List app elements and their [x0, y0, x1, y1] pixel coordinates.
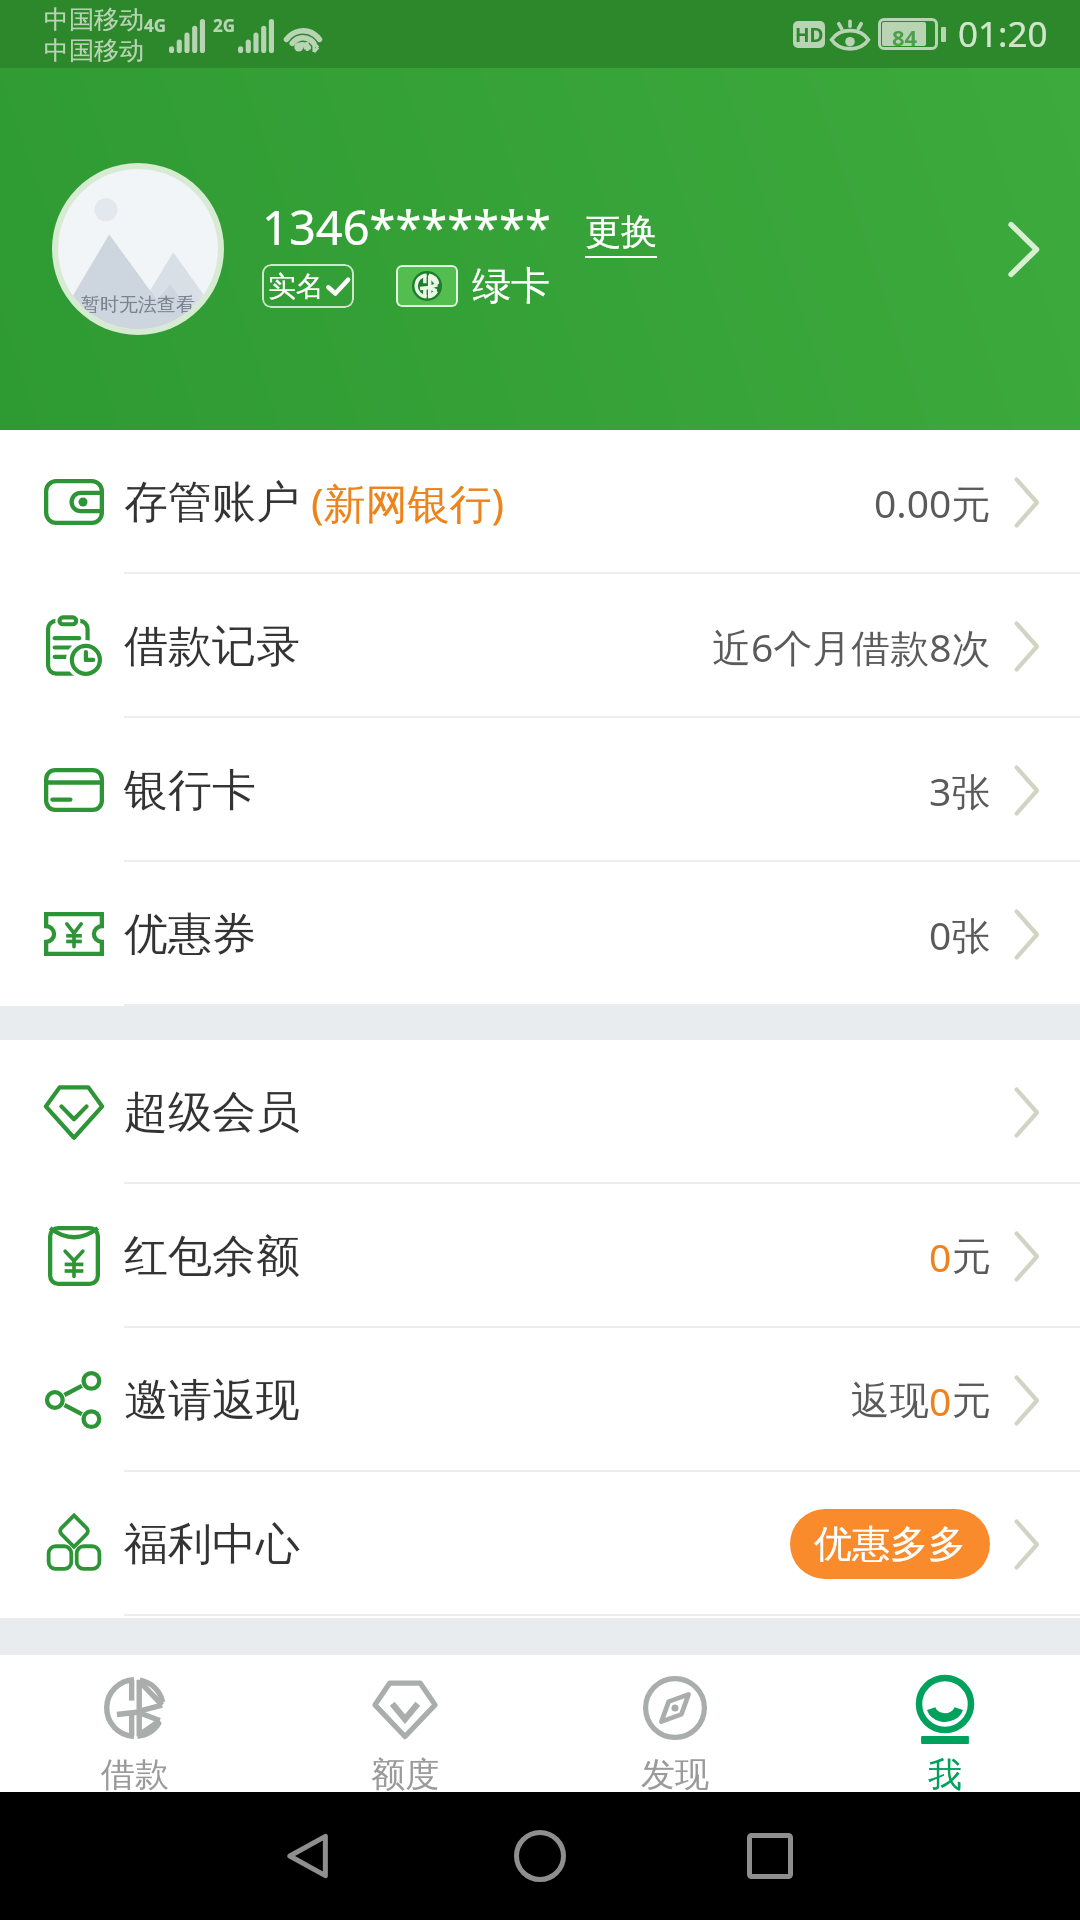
button[interactable]: 发现 — [540, 1655, 810, 1792]
staticText: 邀请返现 — [124, 1373, 300, 1428]
button[interactable]: 我 — [810, 1655, 1080, 1792]
button[interactable]: 福利中心 — [0, 1472, 1080, 1616]
staticText: 84 — [892, 22, 918, 46]
button[interactable]: 额度 — [270, 1655, 540, 1792]
staticText: (新网银行) — [300, 474, 505, 531]
staticText: 1346******* — [262, 195, 551, 259]
button[interactable]: Back — [265, 1811, 355, 1901]
button[interactable]: 邀请返现 — [0, 1328, 1080, 1472]
button[interactable]: Home — [495, 1811, 585, 1901]
staticText: 借款 — [101, 1753, 169, 1792]
button[interactable]: 借款 — [0, 1655, 270, 1792]
button[interactable]: 红包余额 — [0, 1184, 1080, 1328]
staticText: 近6个月借款8次 — [712, 620, 991, 673]
button[interactable]: 存管账户 — [0, 430, 1080, 574]
button[interactable]: 暂时无法查看 — [0, 68, 1080, 430]
staticText: HD — [795, 22, 824, 48]
staticText: 4G — [144, 14, 167, 37]
staticText: 3张 — [929, 764, 991, 817]
staticText: 发现 — [641, 1753, 709, 1792]
staticText: 中国移动 — [44, 35, 144, 66]
staticText: 福利中心 — [124, 1517, 300, 1572]
staticText: 超级会员 — [124, 1085, 300, 1140]
staticText: 01:20 — [958, 10, 1048, 58]
staticText: 更换 — [585, 209, 657, 254]
staticText: 0 — [929, 1230, 952, 1283]
staticText: 存管账户 — [124, 475, 300, 530]
staticText: 优惠券 — [124, 907, 256, 962]
staticText: 红包余额 — [124, 1229, 300, 1284]
staticText: 暂时无法查看 — [81, 293, 195, 317]
button[interactable]: 优惠券 — [0, 862, 1080, 1006]
staticText: 元 — [952, 1232, 991, 1281]
staticText: 我 — [928, 1753, 962, 1792]
button[interactable]: 借款记录 — [0, 574, 1080, 718]
staticText: 额度 — [371, 1753, 439, 1792]
staticText: 0.00元 — [874, 476, 991, 529]
button[interactable]: 超级会员 — [0, 1040, 1080, 1184]
staticText: 实名 — [268, 269, 324, 304]
staticText: 优惠多多 — [814, 1520, 966, 1568]
button[interactable]: Recents — [725, 1811, 815, 1901]
staticText: 中国移动 — [44, 4, 144, 35]
staticText: 返现 — [851, 1376, 929, 1425]
staticText: 0张 — [929, 908, 991, 961]
staticText: 2G — [213, 14, 236, 37]
staticText: 0 — [929, 1374, 952, 1427]
staticText: 银行卡 — [124, 763, 256, 818]
staticText: 绿卡 — [472, 261, 550, 310]
staticText: 元 — [952, 1376, 991, 1425]
button[interactable]: 银行卡 — [0, 718, 1080, 862]
staticText: 借款记录 — [124, 619, 300, 674]
button[interactable]: 更换 — [585, 210, 657, 259]
